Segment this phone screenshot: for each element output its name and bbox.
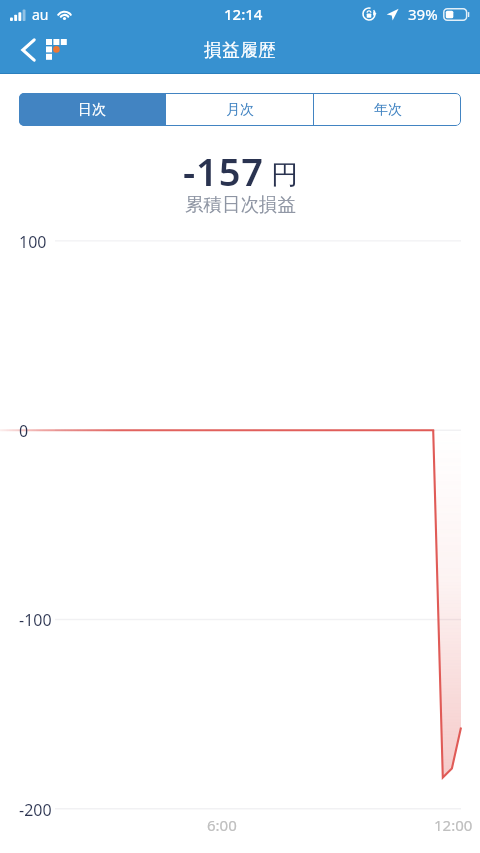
button[interactable]: 月次 <box>166 93 313 126</box>
staticText: -200 <box>19 799 52 821</box>
staticText: 12:00 <box>434 815 473 835</box>
staticText: 年次 <box>374 101 402 119</box>
button[interactable]: 年次 <box>314 93 461 126</box>
staticText: 累積日次損益 <box>185 193 296 216</box>
staticText: 12:14 <box>224 4 263 24</box>
staticText: 円 <box>271 158 298 192</box>
button[interactable]: Back <box>7 33 51 65</box>
staticText: 39% <box>408 4 438 24</box>
button[interactable]: 日次 <box>19 93 165 126</box>
staticText: -157 <box>183 145 264 197</box>
staticText: 損益履歴 <box>204 39 277 61</box>
staticText: 6:00 <box>207 815 237 835</box>
staticText: au <box>32 5 49 24</box>
staticText: 月次 <box>226 101 254 119</box>
staticText: 0 <box>19 420 29 442</box>
staticText: 日次 <box>78 101 106 119</box>
staticText: 100 <box>19 231 47 253</box>
staticText: -100 <box>19 609 52 631</box>
